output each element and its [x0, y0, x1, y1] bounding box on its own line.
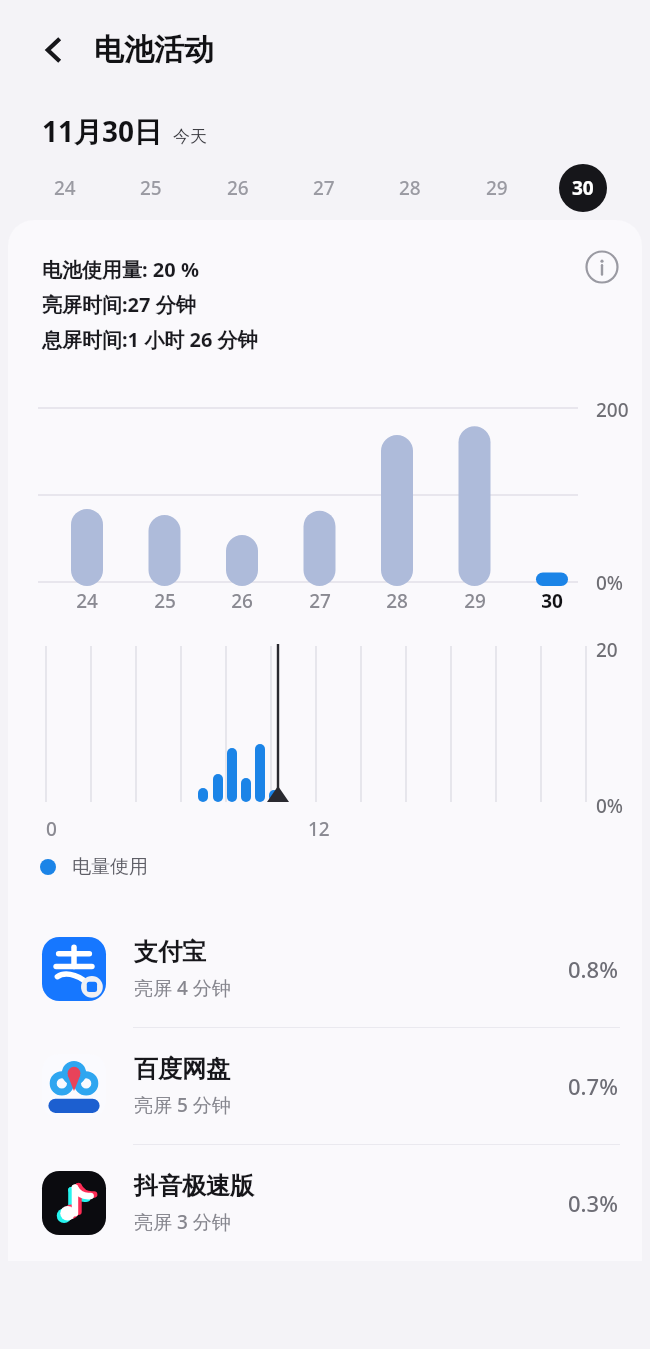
- staticText: 11月30日: [42, 112, 163, 150]
- staticText: 30: [541, 588, 563, 614]
- staticText: 亮屏时间:27 分钟: [42, 291, 196, 318]
- button[interactable]: 支付宝: [8, 911, 642, 1027]
- staticText: 26: [227, 175, 249, 201]
- staticText: 电池使用量: 20 %: [42, 256, 199, 283]
- button[interactable]: 24: [41, 164, 89, 212]
- button[interactable]: 25: [127, 164, 175, 212]
- staticText: 27: [309, 588, 331, 614]
- staticText: 抖音极速版: [134, 1171, 254, 1201]
- button[interactable]: 28: [386, 164, 434, 212]
- staticText: 今天: [173, 126, 207, 147]
- staticText: 24: [76, 588, 98, 614]
- staticText: 亮屏 5 分钟: [134, 1092, 231, 1118]
- staticText: 0%: [596, 570, 624, 596]
- button[interactable]: 30: [559, 164, 607, 212]
- staticText: 电量使用: [72, 855, 148, 879]
- staticText: 30: [572, 175, 594, 201]
- button[interactable]: Back: [28, 24, 80, 76]
- staticText: 25: [154, 588, 176, 614]
- staticText: 0: [46, 816, 57, 842]
- staticText: 29: [464, 588, 486, 614]
- button[interactable]: 27: [300, 164, 348, 212]
- staticText: 29: [486, 175, 508, 201]
- staticText: 25: [140, 175, 162, 201]
- staticText: 0%: [596, 793, 624, 819]
- staticText: 28: [399, 175, 421, 201]
- staticText: 0.3%: [568, 1188, 618, 1218]
- staticText: 24: [54, 175, 76, 201]
- staticText: 支付宝: [134, 937, 206, 967]
- button[interactable]: 抖音极速版: [8, 1145, 642, 1261]
- staticText: 20: [596, 637, 618, 663]
- staticText: 26: [231, 588, 253, 614]
- staticText: 0.7%: [568, 1071, 618, 1101]
- button[interactable]: 26: [214, 164, 262, 212]
- staticText: 息屏时间:1 小时 26 分钟: [42, 326, 258, 353]
- staticText: 亮屏 4 分钟: [134, 975, 231, 1001]
- button[interactable]: 29: [473, 164, 521, 212]
- staticText: 28: [386, 588, 408, 614]
- button[interactable]: 百度网盘: [8, 1028, 642, 1144]
- staticText: 27: [313, 175, 335, 201]
- staticText: 200: [596, 397, 629, 423]
- staticText: 0.8%: [568, 954, 618, 984]
- staticText: 百度网盘: [134, 1054, 230, 1084]
- staticText: 电池活动: [94, 31, 214, 69]
- button[interactable]: Info: [579, 244, 625, 290]
- staticText: 亮屏 3 分钟: [134, 1209, 231, 1235]
- staticText: 12: [308, 816, 330, 842]
